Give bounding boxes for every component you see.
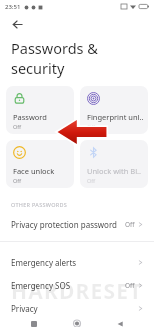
staticText: Off	[13, 123, 22, 130]
button[interactable]: Face unlock	[6, 140, 74, 188]
staticText: Off	[87, 177, 96, 184]
button[interactable]: Home	[68, 320, 86, 327]
button[interactable]: Privacy protection password	[0, 213, 154, 236]
button[interactable]: Emergency alerts	[0, 251, 154, 274]
staticText: Privacy protection password	[11, 219, 117, 230]
staticText: Emergency SOS	[11, 280, 71, 291]
staticText: Face unlock	[13, 166, 55, 176]
staticText: Password	[13, 112, 47, 122]
button[interactable]: Back	[6, 13, 28, 35]
staticText: HARDRESET	[11, 277, 143, 306]
staticText: Passwords & security	[11, 38, 154, 78]
staticText: Off	[13, 177, 22, 184]
button[interactable]: Privacy	[0, 297, 154, 320]
staticText: OTHER PASSWORDS	[11, 201, 68, 208]
staticText: Unlock with Bl..	[87, 166, 142, 176]
staticText: Emergency alerts	[11, 257, 77, 268]
button[interactable]: Password	[6, 86, 74, 134]
staticText: Off	[125, 281, 135, 290]
button[interactable]: Recents	[25, 320, 43, 327]
staticText: Off	[87, 123, 96, 130]
button[interactable]: Unlock with Bl..	[80, 140, 148, 188]
button[interactable]: Back	[111, 320, 129, 327]
staticText: 23:51	[5, 3, 21, 11]
button[interactable]: Fingerprint unl..	[80, 86, 148, 134]
button[interactable]: Emergency SOS	[0, 274, 154, 297]
staticText: Off	[125, 220, 135, 229]
staticText: Privacy	[11, 303, 38, 314]
staticText: Fingerprint unl..	[87, 112, 144, 122]
